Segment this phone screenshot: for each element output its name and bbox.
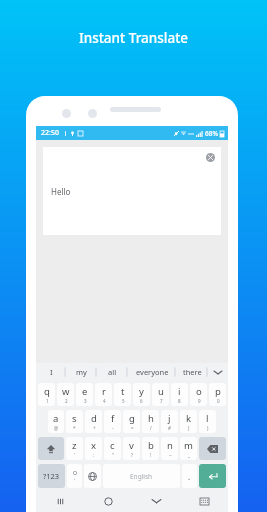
- staticText: =: [131, 425, 134, 431]
- button[interactable]: Clear text: [204, 151, 217, 164]
- button[interactable]: o: [190, 383, 207, 406]
- staticText: 7: [160, 398, 163, 404]
- staticText: 68%: [205, 129, 218, 138]
- staticText: my: [76, 367, 87, 377]
- button[interactable]: English: [103, 464, 180, 488]
- staticText: 9: [198, 398, 201, 404]
- staticText: everyone: [136, 367, 169, 377]
- button[interactable]: q: [38, 383, 55, 406]
- button[interactable]: n: [161, 437, 178, 460]
- button[interactable]: Comma: [67, 464, 82, 488]
- staticText: g: [129, 412, 135, 425]
- staticText: h: [148, 412, 154, 425]
- staticText: l: [206, 412, 209, 425]
- staticText: i: [178, 385, 181, 398]
- staticText: *: [73, 425, 76, 431]
- button[interactable]: Hello: [43, 147, 221, 235]
- staticText: 6: [140, 398, 143, 404]
- button[interactable]: Period: [182, 464, 197, 488]
- staticText: d: [91, 412, 97, 425]
- staticText: (: [188, 425, 190, 431]
- staticText: j: [168, 412, 171, 425]
- button[interactable]: t: [114, 383, 131, 406]
- staticText: b: [148, 439, 154, 452]
- staticText: /: [150, 425, 152, 431]
- staticText: x: [91, 439, 97, 452]
- staticText: u: [158, 385, 164, 398]
- button[interactable]: w: [57, 383, 74, 406]
- button[interactable]: Backspace: [199, 437, 226, 460]
- button[interactable]: Recent apps: [36, 490, 84, 512]
- staticText: ): [207, 425, 209, 431]
- staticText: I: [50, 367, 53, 377]
- button[interactable]: p: [209, 383, 226, 406]
- staticText: +: [93, 425, 96, 431]
- button[interactable]: s: [66, 410, 83, 433]
- button[interactable]: Change keyboard language: [84, 464, 101, 488]
- button[interactable]: j: [161, 410, 178, 433]
- staticText: ,: [74, 475, 76, 482]
- button[interactable]: a: [48, 410, 64, 433]
- button[interactable]: Home: [84, 490, 132, 512]
- button[interactable]: Enter: [199, 464, 226, 488]
- button[interactable]: i: [171, 383, 188, 406]
- staticText: 3: [84, 398, 87, 404]
- button[interactable]: Switch keyboard: [180, 490, 228, 512]
- staticText: Hello: [51, 186, 71, 197]
- button[interactable]: d: [85, 410, 102, 433]
- staticText: ?: [131, 452, 133, 458]
- button[interactable]: Hide keyboard: [132, 490, 180, 512]
- staticText: ": [112, 452, 114, 458]
- staticText: p: [215, 385, 221, 398]
- button[interactable]: y: [133, 383, 150, 406]
- staticText: @: [54, 425, 59, 431]
- staticText: n: [167, 439, 173, 452]
- staticText: .: [188, 471, 191, 482]
- button[interactable]: there: [176, 363, 208, 381]
- button[interactable]: Shift: [38, 437, 64, 460]
- button[interactable]: l: [199, 410, 216, 433]
- button[interactable]: v: [123, 437, 140, 460]
- staticText: m: [184, 439, 193, 452]
- staticText: f: [111, 412, 115, 425]
- staticText: :: [93, 452, 95, 458]
- button[interactable]: g: [123, 410, 140, 433]
- staticText: k: [186, 412, 192, 425]
- button[interactable]: u: [152, 383, 169, 406]
- button[interactable]: e: [76, 383, 93, 406]
- button[interactable]: k: [180, 410, 197, 433]
- button[interactable]: More suggestions: [208, 363, 228, 381]
- staticText: z: [72, 439, 77, 452]
- staticText: r: [102, 385, 106, 398]
- staticText: o: [196, 385, 202, 398]
- staticText: v: [129, 439, 134, 452]
- button[interactable]: all: [97, 363, 128, 381]
- button[interactable]: x: [85, 437, 102, 460]
- button[interactable]: h: [142, 410, 159, 433]
- staticText: 22:50: [41, 128, 59, 138]
- button[interactable]: ?123: [38, 464, 65, 488]
- staticText: 5: [122, 398, 125, 404]
- staticText: y: [139, 385, 144, 398]
- staticText: 2: [65, 398, 68, 404]
- button[interactable]: f: [104, 410, 121, 433]
- button[interactable]: b: [142, 437, 159, 460]
- button[interactable]: m: [180, 437, 197, 460]
- button[interactable]: my: [66, 363, 97, 381]
- staticText: all: [108, 367, 117, 377]
- staticText: w: [62, 385, 70, 398]
- button[interactable]: r: [95, 383, 112, 406]
- button[interactable]: I: [36, 363, 66, 381]
- staticText: q: [44, 385, 50, 398]
- staticText: s: [72, 412, 77, 425]
- button[interactable]: c: [104, 437, 121, 460]
- button[interactable]: z: [66, 437, 83, 460]
- staticText: 1: [46, 398, 49, 404]
- staticText: t: [121, 385, 125, 398]
- staticText: c: [110, 439, 115, 452]
- staticText: #: [168, 425, 171, 431]
- staticText: ': [74, 452, 76, 458]
- staticText: !: [150, 452, 152, 458]
- button[interactable]: everyone: [128, 363, 176, 381]
- staticText: 8: [178, 398, 181, 404]
